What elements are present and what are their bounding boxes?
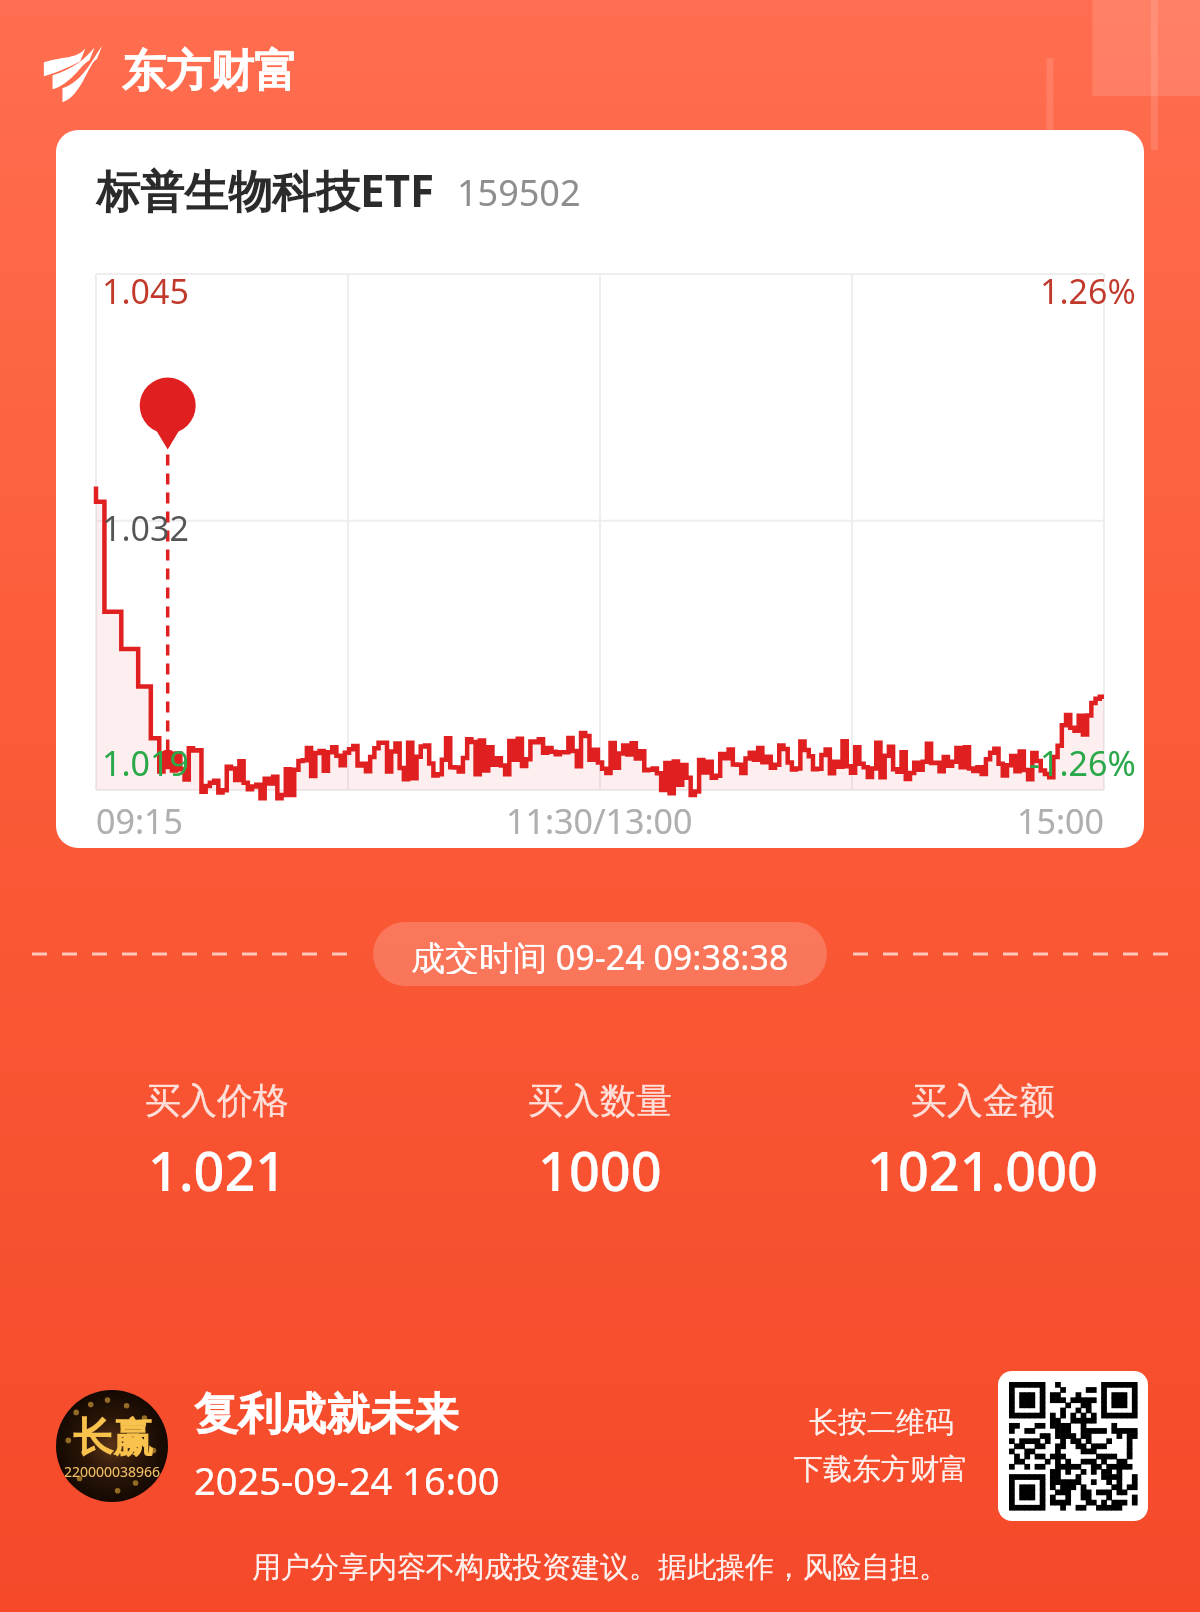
button[interactable]: 东方财富 logo — [42, 44, 298, 99]
button[interactable]: 买入数量 — [408, 1078, 791, 1207]
staticText: 东方财富 — [122, 44, 298, 99]
staticText: 1.021 — [148, 1133, 287, 1207]
staticText: 1021.000 — [867, 1133, 1098, 1207]
staticText: 下载东方财富 — [794, 1451, 968, 1488]
button[interactable]: 买入金额 — [791, 1078, 1174, 1207]
staticText: 159502 — [457, 168, 581, 217]
staticText: 2025-09-24 16:00 — [194, 1454, 500, 1506]
staticText: 15:00 — [1017, 798, 1104, 844]
staticText: 09:15 — [96, 798, 183, 844]
staticText: 1.045 — [102, 268, 189, 314]
staticText: 11:30/13:00 — [506, 798, 693, 844]
staticText: 长赢 — [73, 1412, 153, 1462]
staticText: 买入价格 — [145, 1078, 289, 1123]
staticText: 长按二维码 — [809, 1404, 954, 1441]
staticText: 1.26% — [1040, 268, 1136, 314]
staticText: -1.26% — [1029, 740, 1136, 786]
staticText: 标普生物科技ETF — [96, 160, 435, 220]
button[interactable]: 成交时间 09-24 09:38:38 — [411, 934, 789, 974]
button[interactable]: 二维码 下载东方财富 — [998, 1371, 1148, 1521]
staticText: 成交时间 09-24 09:38:38 — [411, 934, 789, 974]
staticText: 1000 — [538, 1133, 662, 1207]
button[interactable]: 买入价格 — [26, 1078, 408, 1207]
button[interactable]: 标普生物科技ETF — [56, 130, 1144, 848]
staticText: 复利成就未来 — [194, 1387, 458, 1442]
staticText: 1.032 — [102, 505, 189, 551]
staticText: 用户分享内容不构成投资建议。据此操作，风险自担。 — [0, 1549, 1200, 1586]
staticText: 220000038966 — [64, 1462, 161, 1481]
button[interactable]: 用户头像 长赢 — [56, 1390, 168, 1502]
staticText: 1.019 — [102, 740, 189, 786]
staticText: 买入金额 — [911, 1078, 1055, 1123]
other: 东方财富 logo — [42, 45, 104, 99]
staticText: 买入数量 — [528, 1078, 672, 1123]
